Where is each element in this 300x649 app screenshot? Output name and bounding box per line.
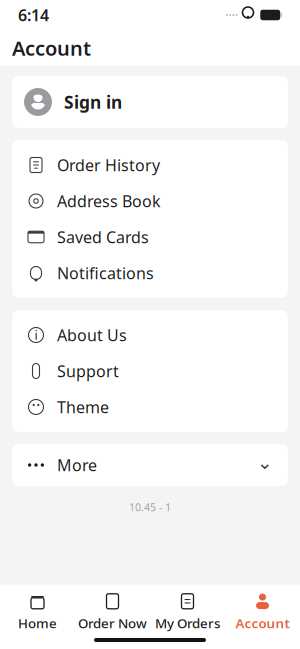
staticText: Home — [18, 614, 57, 632]
staticText: Order History — [57, 154, 160, 176]
staticText: 6:14 — [18, 4, 49, 26]
button[interactable]: Support — [12, 353, 288, 389]
button[interactable]: i — [12, 317, 288, 353]
button[interactable]: My Orders — [150, 584, 225, 632]
staticText: Saved Cards — [57, 226, 149, 248]
staticText: Theme — [57, 396, 109, 418]
button[interactable]: Home — [0, 584, 75, 632]
button[interactable]: Notifications — [12, 255, 288, 291]
staticText: Notifications — [57, 262, 154, 284]
staticText: Sign in — [64, 90, 122, 113]
staticText: Account — [12, 35, 91, 61]
button[interactable]: Account — [225, 584, 300, 632]
button[interactable]: Sign in — [12, 76, 288, 128]
staticText: Order Now — [78, 614, 147, 632]
staticText: ⌄ — [257, 452, 273, 473]
staticText: Account — [235, 614, 289, 632]
staticText: More — [57, 454, 97, 476]
staticText: i — [34, 327, 37, 343]
staticText: Support — [57, 360, 119, 382]
staticText: Address Book — [57, 190, 161, 212]
staticText: My Orders — [155, 614, 220, 632]
button[interactable]: Order History — [12, 147, 288, 183]
button[interactable]: Theme — [12, 389, 288, 425]
button[interactable]: Order Now — [75, 584, 150, 632]
staticText: 10.45 - 1 — [129, 500, 171, 514]
button[interactable]: More — [12, 444, 288, 486]
staticText: About Us — [57, 324, 127, 346]
button[interactable]: Address Book — [12, 183, 288, 219]
button[interactable]: Saved Cards — [12, 219, 288, 255]
